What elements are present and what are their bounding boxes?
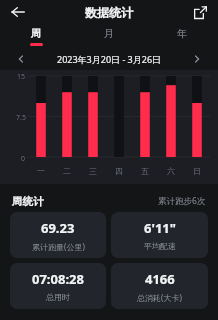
staticText: 三 <box>89 166 97 176</box>
staticText: 月 <box>104 27 114 40</box>
button[interactable]: Share <box>189 1 211 23</box>
button[interactable]: Back <box>6 0 30 24</box>
staticText: 累计跑步6次 <box>158 195 206 207</box>
staticText: 四 <box>115 166 123 176</box>
staticText: 4166 <box>145 270 175 288</box>
button[interactable]: 6'11" <box>111 212 208 258</box>
staticText: 数据统计 <box>85 5 133 20</box>
staticText: 07:08:28 <box>32 270 84 288</box>
staticText: 一 <box>37 166 45 176</box>
staticText: 五 <box>141 166 149 176</box>
staticText: 六 <box>167 166 175 176</box>
staticText: 累计跑量(公里) <box>32 241 85 252</box>
staticText: 6'11" <box>144 219 176 237</box>
staticText: 日 <box>193 166 201 176</box>
staticText: 年 <box>177 27 187 40</box>
button[interactable]: 周 <box>0 24 72 48</box>
button[interactable]: 69.23 <box>10 212 106 258</box>
staticText: 2023年3月20日 - 3月26日 <box>57 53 162 65</box>
staticText: 周 <box>31 27 41 40</box>
staticText: 0 <box>21 154 26 164</box>
staticText: 15 <box>17 72 26 82</box>
staticText: 69.23 <box>41 219 75 237</box>
staticText: 7.5 <box>16 113 26 123</box>
button[interactable]: 07:08:28 <box>10 263 106 309</box>
staticText: 总用时 <box>46 292 70 302</box>
button[interactable]: 月 <box>72 24 145 48</box>
staticText: 平均配速 <box>144 241 176 251</box>
button[interactable]: Previous week <box>12 50 30 68</box>
button[interactable]: Next week <box>188 50 206 68</box>
staticText: 周统计 <box>12 195 44 208</box>
staticText: 总消耗(大卡) <box>137 292 182 303</box>
staticText: 二 <box>63 166 71 176</box>
button[interactable]: 4166 <box>111 263 208 309</box>
button[interactable]: 年 <box>145 24 218 48</box>
